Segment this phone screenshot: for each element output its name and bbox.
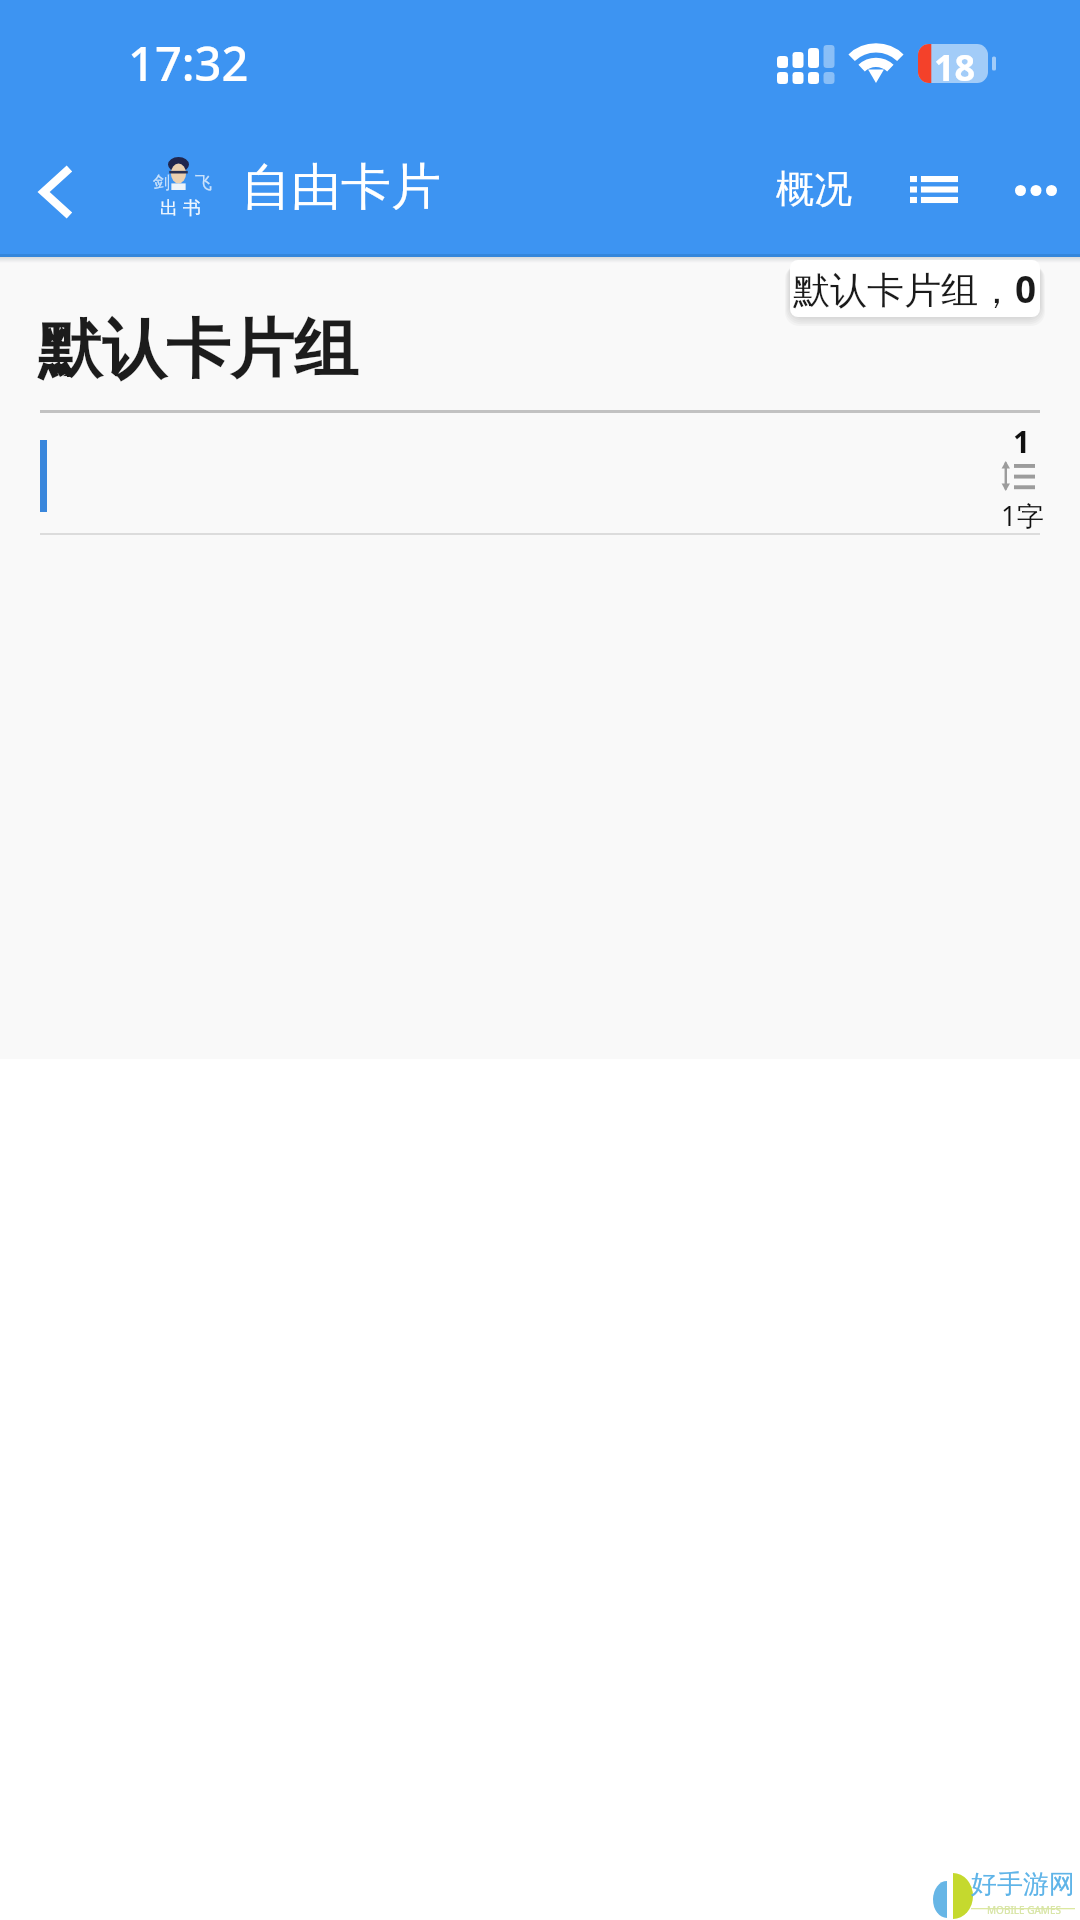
staticText: 出 书: [160, 195, 201, 220]
button[interactable]: List view: [884, 143, 984, 235]
staticText: 自由卡片: [241, 156, 441, 219]
staticText: 17:32: [128, 31, 249, 95]
staticText: 飞: [195, 172, 212, 193]
staticText: MOBILE GAMES: [987, 1903, 1061, 1917]
staticText: 1: [1013, 421, 1031, 462]
button[interactable]: 概况: [760, 143, 868, 235]
staticText: 默认卡片组: [38, 309, 358, 390]
staticText: 1字: [1001, 497, 1044, 534]
staticText: 18: [934, 43, 976, 82]
button[interactable]: Back: [5, 142, 105, 242]
staticText: 剑: [153, 172, 170, 193]
staticText: 概况: [776, 165, 852, 213]
button[interactable]: More options: [989, 144, 1080, 236]
button[interactable]: Card count: [980, 425, 1060, 531]
staticText: 默认卡片组，0: [793, 263, 1037, 314]
button[interactable]: 默认卡片组，0: [790, 260, 1040, 317]
staticText: 好手游网: [971, 1868, 1075, 1901]
